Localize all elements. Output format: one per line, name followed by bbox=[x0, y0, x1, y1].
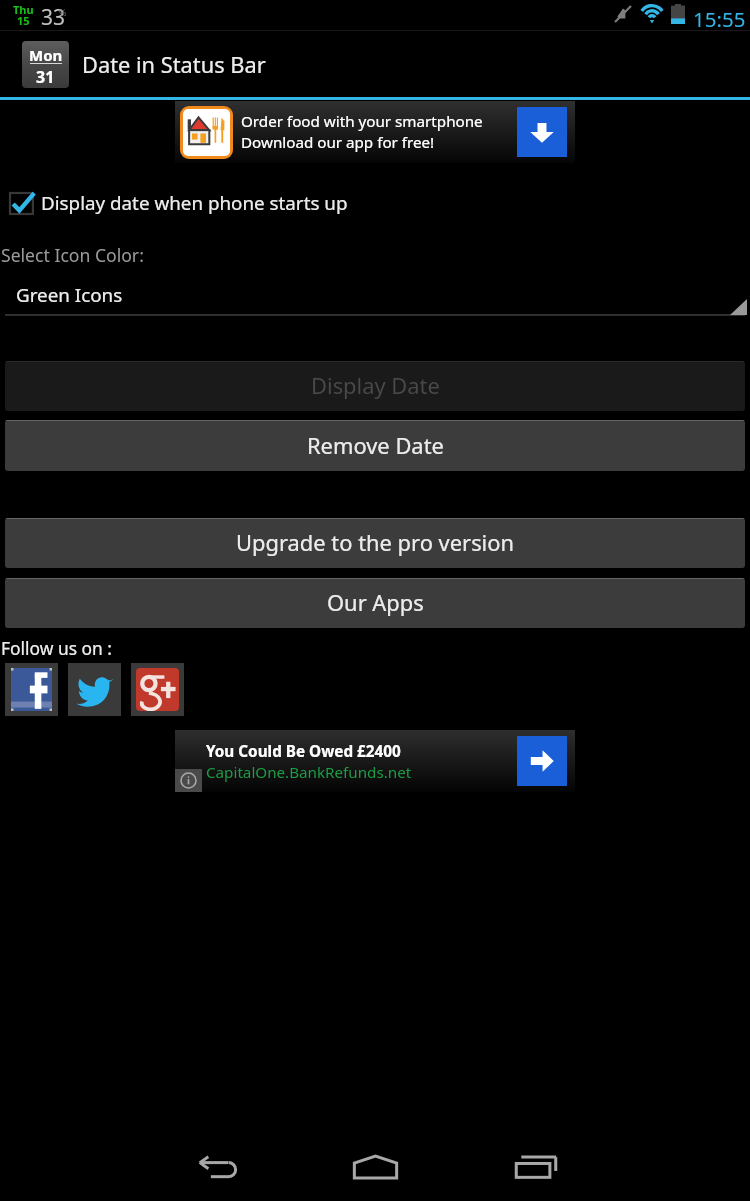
staticText: Select Icon Color: bbox=[1, 243, 144, 267]
staticText: Display date when phone starts up bbox=[41, 190, 348, 216]
button[interactable]: Google Plus bbox=[131, 663, 184, 716]
button[interactable]: Display date when phone starts up bbox=[0, 183, 750, 223]
button[interactable]: Twitter bbox=[68, 663, 121, 716]
button[interactable]: Green Icons bbox=[0, 278, 750, 320]
staticText: 15 bbox=[17, 13, 30, 28]
staticText: Download our app for free! bbox=[241, 132, 435, 153]
staticText: Display Date bbox=[311, 371, 440, 401]
button[interactable]: You Could Be Owed £2400 bbox=[175, 730, 575, 792]
button[interactable]: Order food with your smartphone bbox=[175, 101, 575, 163]
staticText: Order food with your smartphone bbox=[241, 111, 483, 132]
button[interactable]: Upgrade to the pro version bbox=[5, 518, 745, 568]
staticText: Remove Date bbox=[307, 431, 444, 461]
button[interactable]: Our Apps bbox=[5, 578, 745, 628]
button[interactable]: Open advertisement bbox=[517, 736, 567, 786]
staticText: % bbox=[59, 6, 67, 18]
staticText: 31 bbox=[36, 66, 55, 88]
staticText: Upgrade to the pro version bbox=[236, 528, 515, 558]
staticText: Green Icons bbox=[16, 282, 123, 308]
button[interactable]: Back bbox=[150, 1133, 285, 1201]
button[interactable]: Remove Date bbox=[5, 420, 745, 471]
staticText: Date in Status Bar bbox=[82, 50, 266, 80]
button[interactable]: Facebook bbox=[5, 663, 58, 716]
button[interactable]: Download bbox=[517, 107, 567, 157]
staticText: You Could Be Owed £2400 bbox=[206, 741, 401, 762]
staticText: Thu bbox=[13, 2, 34, 17]
staticText: CapitalOne.BankRefunds.net bbox=[206, 762, 412, 783]
button[interactable]: Recent apps bbox=[468, 1133, 603, 1201]
staticText: Mon bbox=[29, 45, 63, 65]
button[interactable]: Home bbox=[308, 1133, 443, 1201]
staticText: 33 bbox=[41, 3, 66, 27]
staticText: 15:55 bbox=[693, 5, 746, 33]
staticText: Our Apps bbox=[327, 588, 424, 618]
staticText: Follow us on : bbox=[1, 636, 112, 660]
button[interactable]: Display Date bbox=[5, 361, 745, 411]
